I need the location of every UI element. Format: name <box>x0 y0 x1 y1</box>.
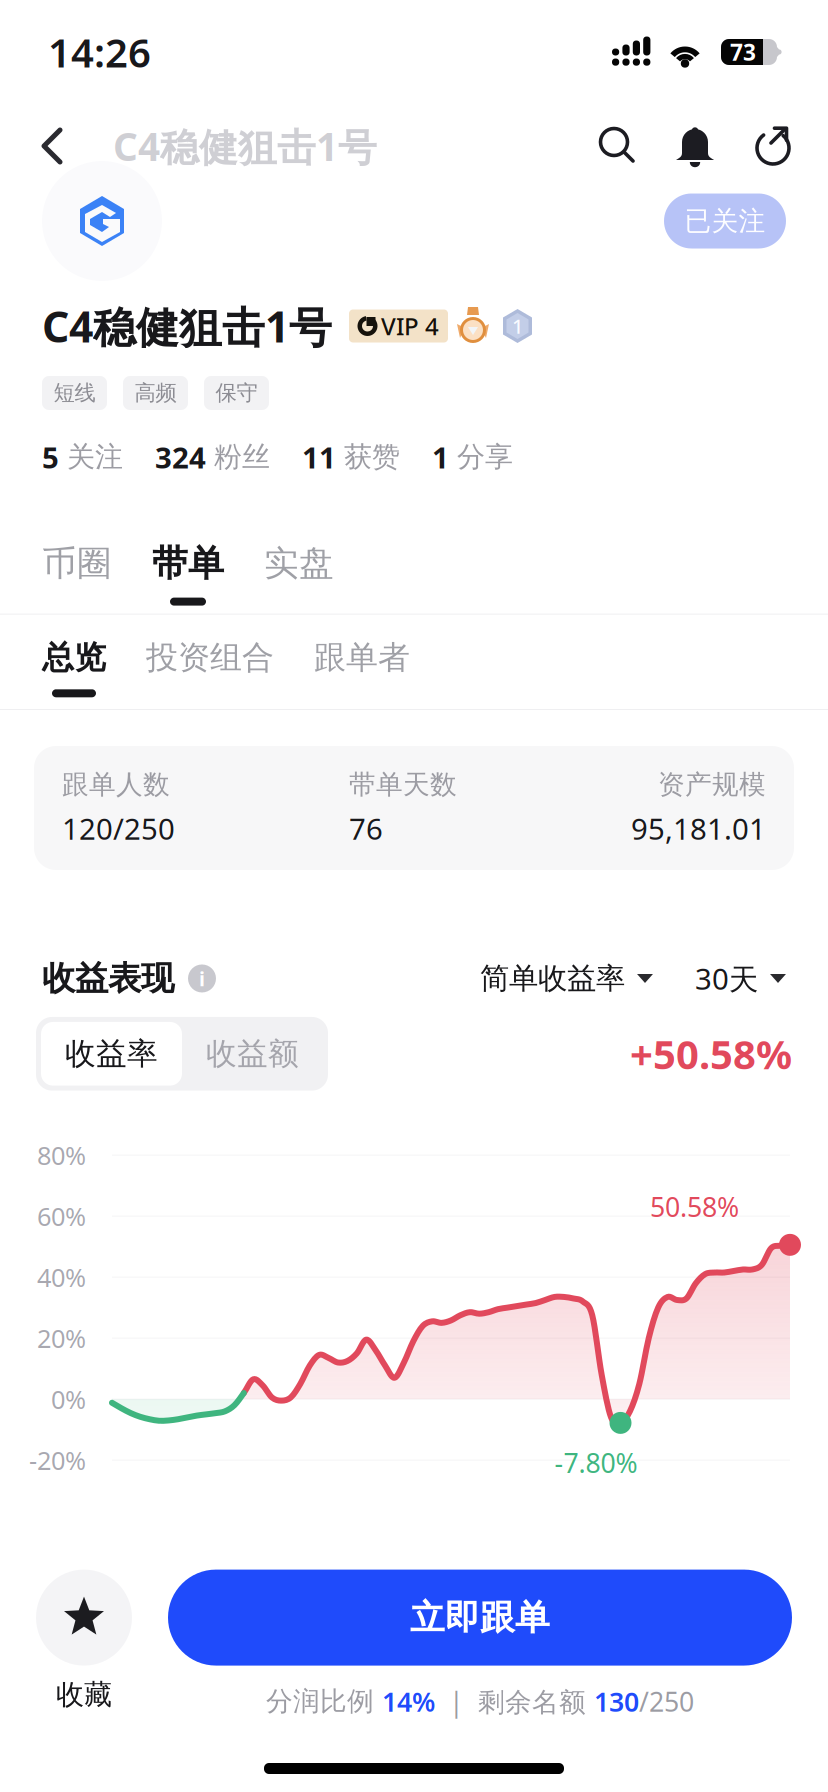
staticText: 带单 <box>152 541 224 586</box>
staticText: 5 <box>42 437 59 476</box>
button[interactable]: 跟单者 <box>314 638 410 697</box>
staticText: 收藏 <box>56 1678 112 1712</box>
staticText: i <box>199 965 205 992</box>
staticText: 76 <box>349 809 383 848</box>
staticText: 实盘 <box>264 542 334 585</box>
button[interactable]: 投资组合 <box>146 638 274 697</box>
staticText: C4稳健狙击1号 <box>42 298 332 354</box>
staticText: 跟单者 <box>314 638 410 677</box>
staticText: 收益表现 <box>42 958 174 999</box>
staticText: 关注 <box>67 440 123 474</box>
staticText: 总览 <box>42 638 106 677</box>
staticText: 跟单人数 <box>62 768 170 801</box>
staticText: 高频 <box>134 380 176 406</box>
staticText: | 剩余名额 <box>435 1684 594 1719</box>
button[interactable]: 实盘 <box>264 542 334 605</box>
staticText: 保守 <box>215 380 257 406</box>
button[interactable]: Notifications <box>665 123 725 169</box>
button[interactable]: 立即跟单 <box>168 1570 792 1666</box>
staticText: 20% <box>37 1321 86 1355</box>
staticText: 立即跟单 <box>410 1596 550 1639</box>
button[interactable]: 收藏 <box>36 1570 132 1712</box>
staticText: -7.80% <box>554 1445 637 1480</box>
staticText: 资产规模 <box>658 768 766 801</box>
button[interactable]: 收益率 <box>41 1022 182 1086</box>
staticText: 获赞 <box>344 440 400 474</box>
staticText: 60% <box>37 1199 86 1233</box>
button[interactable]: 带单 <box>152 541 224 606</box>
button[interactable]: 30天 <box>695 959 786 998</box>
staticText: 简单收益率 <box>480 960 625 996</box>
staticText: 40% <box>37 1260 86 1294</box>
staticText: 50.58% <box>650 1189 739 1224</box>
staticText: 80% <box>37 1138 86 1172</box>
staticText: 已关注 <box>684 205 765 237</box>
staticText: +50.58% <box>630 1027 792 1080</box>
staticText: 95,181.01 <box>631 809 766 848</box>
staticText: 324 <box>155 437 206 476</box>
staticText: VIP 4 <box>381 310 439 342</box>
staticText: 73 <box>730 37 756 67</box>
button[interactable]: Share <box>743 123 803 169</box>
staticText: 收益额 <box>206 1035 299 1073</box>
staticText: 短线 <box>53 380 95 406</box>
staticText: 1 <box>512 313 523 339</box>
staticText: 分润比例 <box>266 1685 382 1718</box>
staticText: 粉丝 <box>214 440 270 474</box>
staticText: 收益率 <box>65 1035 158 1073</box>
staticText: 带单天数 <box>349 768 457 801</box>
staticText: 120/250 <box>62 809 175 848</box>
staticText: 币圈 <box>42 542 112 585</box>
button[interactable]: 收益额 <box>182 1022 323 1086</box>
button[interactable]: 已关注 <box>664 193 786 248</box>
staticText: 11 <box>302 437 336 476</box>
staticText: 130 <box>594 1684 639 1719</box>
staticText: 0% <box>51 1382 86 1416</box>
staticText: /250 <box>639 1684 694 1719</box>
button[interactable]: 币圈 <box>42 542 112 605</box>
button[interactable]: 总览 <box>42 638 106 697</box>
staticText: 1 <box>432 437 449 476</box>
staticText: C4稳健狙击1号 <box>113 120 377 172</box>
staticText: 分享 <box>457 440 513 474</box>
staticText: 14:26 <box>48 25 151 78</box>
button[interactable]: 简单收益率 <box>480 960 653 996</box>
button[interactable]: Search <box>587 123 647 169</box>
staticText: 投资组合 <box>146 638 274 677</box>
staticText: -20% <box>29 1443 86 1477</box>
staticText: 14% <box>382 1684 435 1719</box>
button[interactable]: Back <box>0 111 79 181</box>
staticText: 30天 <box>695 959 758 998</box>
